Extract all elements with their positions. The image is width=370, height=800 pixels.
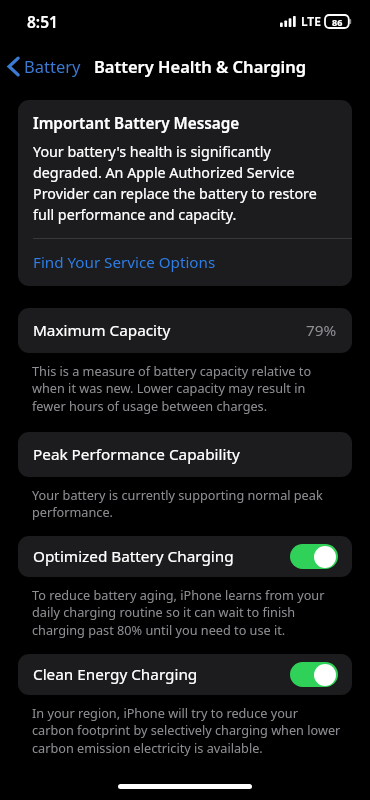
button[interactable]: Clean Energy Charging [18, 654, 352, 695]
staticText: 8:51 [27, 11, 58, 32]
staticText: This is a measure of battery capacity re… [32, 362, 342, 414]
staticText: Peak Performance Capability [33, 444, 240, 465]
staticText: Your battery is currently supporting nor… [32, 486, 342, 520]
staticText: To reduce battery aging, iPhone learns f… [32, 586, 342, 638]
staticText: In your region, iPhone will try to reduc… [32, 704, 342, 756]
staticText: Clean Energy Charging [33, 664, 198, 685]
staticText: 79% [306, 320, 337, 341]
staticText: Battery [24, 55, 81, 77]
button[interactable]: Optimized Battery Charging [18, 536, 352, 577]
staticText: Battery Health & Charging [94, 55, 307, 77]
button[interactable]: Peak Performance Capability [18, 432, 352, 477]
button[interactable]: Maximum Capacity [18, 308, 352, 353]
button[interactable]: Toggle on [290, 544, 338, 569]
staticText: Optimized Battery Charging [33, 546, 234, 567]
staticText: Find Your Service Options [33, 252, 216, 273]
staticText: LTE [301, 13, 321, 29]
button[interactable]: Battery [0, 49, 87, 83]
staticText: Important Battery Message [33, 113, 240, 134]
staticText: Maximum Capacity [33, 320, 171, 341]
staticText: 86 [332, 16, 343, 28]
button[interactable]: Toggle on [290, 662, 338, 687]
button[interactable]: Find Your Service Options [18, 239, 352, 286]
staticText: Your battery's health is significantly d… [33, 142, 338, 225]
